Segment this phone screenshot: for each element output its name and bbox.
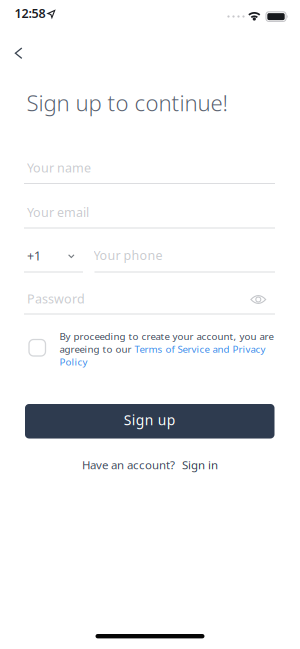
button[interactable]: Country code <box>24 246 86 272</box>
staticText: 12:58 <box>14 4 45 22</box>
staticText: Sign in <box>182 457 218 473</box>
button[interactable]: Back <box>5 37 32 69</box>
staticText: Terms of Service and Privacy <box>134 342 265 356</box>
button[interactable]: Policy <box>59 355 87 368</box>
button[interactable]: Sign up <box>25 404 274 438</box>
staticText: Sign up to continue! <box>26 87 227 118</box>
staticText: Password <box>27 290 85 307</box>
staticText: Sign up <box>124 410 176 429</box>
staticText: Have an account? <box>82 457 175 473</box>
staticText: +1 <box>27 247 41 264</box>
button[interactable]: Show password <box>242 287 274 312</box>
staticText: Your phone <box>93 246 162 264</box>
button[interactable]: Sign in <box>182 457 218 473</box>
button[interactable]: Agree to terms <box>23 333 51 362</box>
staticText: Policy <box>59 355 87 368</box>
button[interactable]: Terms of Service and Privacy <box>134 342 265 356</box>
staticText: agreeing to our <box>59 342 134 356</box>
staticText: By proceeding to create your account, yo… <box>59 329 273 343</box>
staticText: Your email <box>27 203 89 221</box>
staticText: Your name <box>27 159 91 176</box>
